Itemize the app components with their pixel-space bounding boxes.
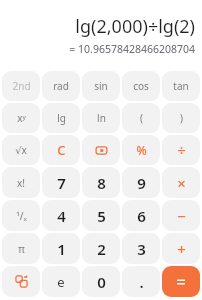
- staticText: ÷: [177, 140, 186, 160]
- button[interactable]: tan: [162, 71, 200, 101]
- button[interactable]: 1: [42, 233, 80, 264]
- staticText: π: [18, 242, 25, 256]
- staticText: sin: [94, 79, 108, 93]
- staticText: 7: [57, 173, 66, 193]
- button[interactable]: Equals: [162, 266, 200, 297]
- staticText: lg: [57, 111, 66, 125]
- button[interactable]: %: [122, 135, 160, 165]
- button[interactable]: C: [42, 135, 80, 165]
- button[interactable]: lg: [42, 103, 80, 133]
- button[interactable]: 2: [82, 233, 120, 264]
- button[interactable]: +: [162, 233, 200, 264]
- staticText: lg(2,000)÷lg(2): [75, 14, 195, 39]
- button[interactable]: 9: [122, 167, 160, 198]
- staticText: 3: [137, 239, 146, 259]
- button[interactable]: ÷: [162, 135, 200, 165]
- button[interactable]: sin: [82, 71, 120, 101]
- staticText: √x: [15, 143, 27, 157]
- staticText: x!: [17, 176, 25, 190]
- staticText: 5: [97, 206, 106, 226]
- staticText: 0: [97, 272, 106, 292]
- button[interactable]: cos: [122, 71, 160, 101]
- button[interactable]: (: [122, 103, 160, 133]
- button[interactable]: Backspace: [82, 135, 120, 165]
- button[interactable]: Unit converter: [2, 266, 40, 297]
- button[interactable]: xʸ: [2, 103, 40, 133]
- button[interactable]: e: [42, 266, 80, 297]
- staticText: xʸ: [17, 111, 26, 125]
- staticText: ¹/ₓ: [16, 209, 27, 223]
- button[interactable]: rad: [42, 71, 80, 101]
- button[interactable]: −: [162, 200, 200, 231]
- staticText: tan: [173, 79, 189, 93]
- button[interactable]: 3: [122, 233, 160, 264]
- staticText: 1: [57, 239, 66, 259]
- button[interactable]: ln: [82, 103, 120, 133]
- staticText: %: [136, 142, 147, 158]
- staticText: = 10.96578428466208704: [69, 42, 195, 56]
- staticText: 6: [137, 206, 146, 226]
- staticText: 2nd: [12, 79, 31, 93]
- button[interactable]: 5: [82, 200, 120, 231]
- staticText: ln: [97, 111, 106, 125]
- button[interactable]: √x: [2, 135, 40, 165]
- button[interactable]: ×: [162, 167, 200, 198]
- staticText: 8: [97, 173, 106, 193]
- button[interactable]: 7: [42, 167, 80, 198]
- staticText: 4: [57, 206, 66, 226]
- staticText: −: [177, 206, 186, 226]
- button[interactable]: .: [122, 266, 160, 297]
- button[interactable]: x!: [2, 167, 40, 198]
- staticText: C: [57, 141, 66, 159]
- staticText: ×: [177, 173, 186, 193]
- staticText: 2: [97, 239, 106, 259]
- staticText: 9: [137, 173, 146, 193]
- button[interactable]: π: [2, 233, 40, 264]
- staticText: ): [180, 111, 183, 125]
- button[interactable]: 4: [42, 200, 80, 231]
- staticText: rad: [53, 79, 69, 93]
- button[interactable]: 8: [82, 167, 120, 198]
- staticText: e: [57, 273, 65, 291]
- button[interactable]: 2nd: [2, 71, 40, 101]
- staticText: +: [177, 239, 186, 259]
- button[interactable]: 6: [122, 200, 160, 231]
- staticText: .: [139, 272, 144, 292]
- button[interactable]: ¹/ₓ: [2, 200, 40, 231]
- button[interactable]: ): [162, 103, 200, 133]
- button[interactable]: 0: [82, 266, 120, 297]
- staticText: (: [140, 111, 143, 125]
- staticText: cos: [133, 79, 149, 93]
